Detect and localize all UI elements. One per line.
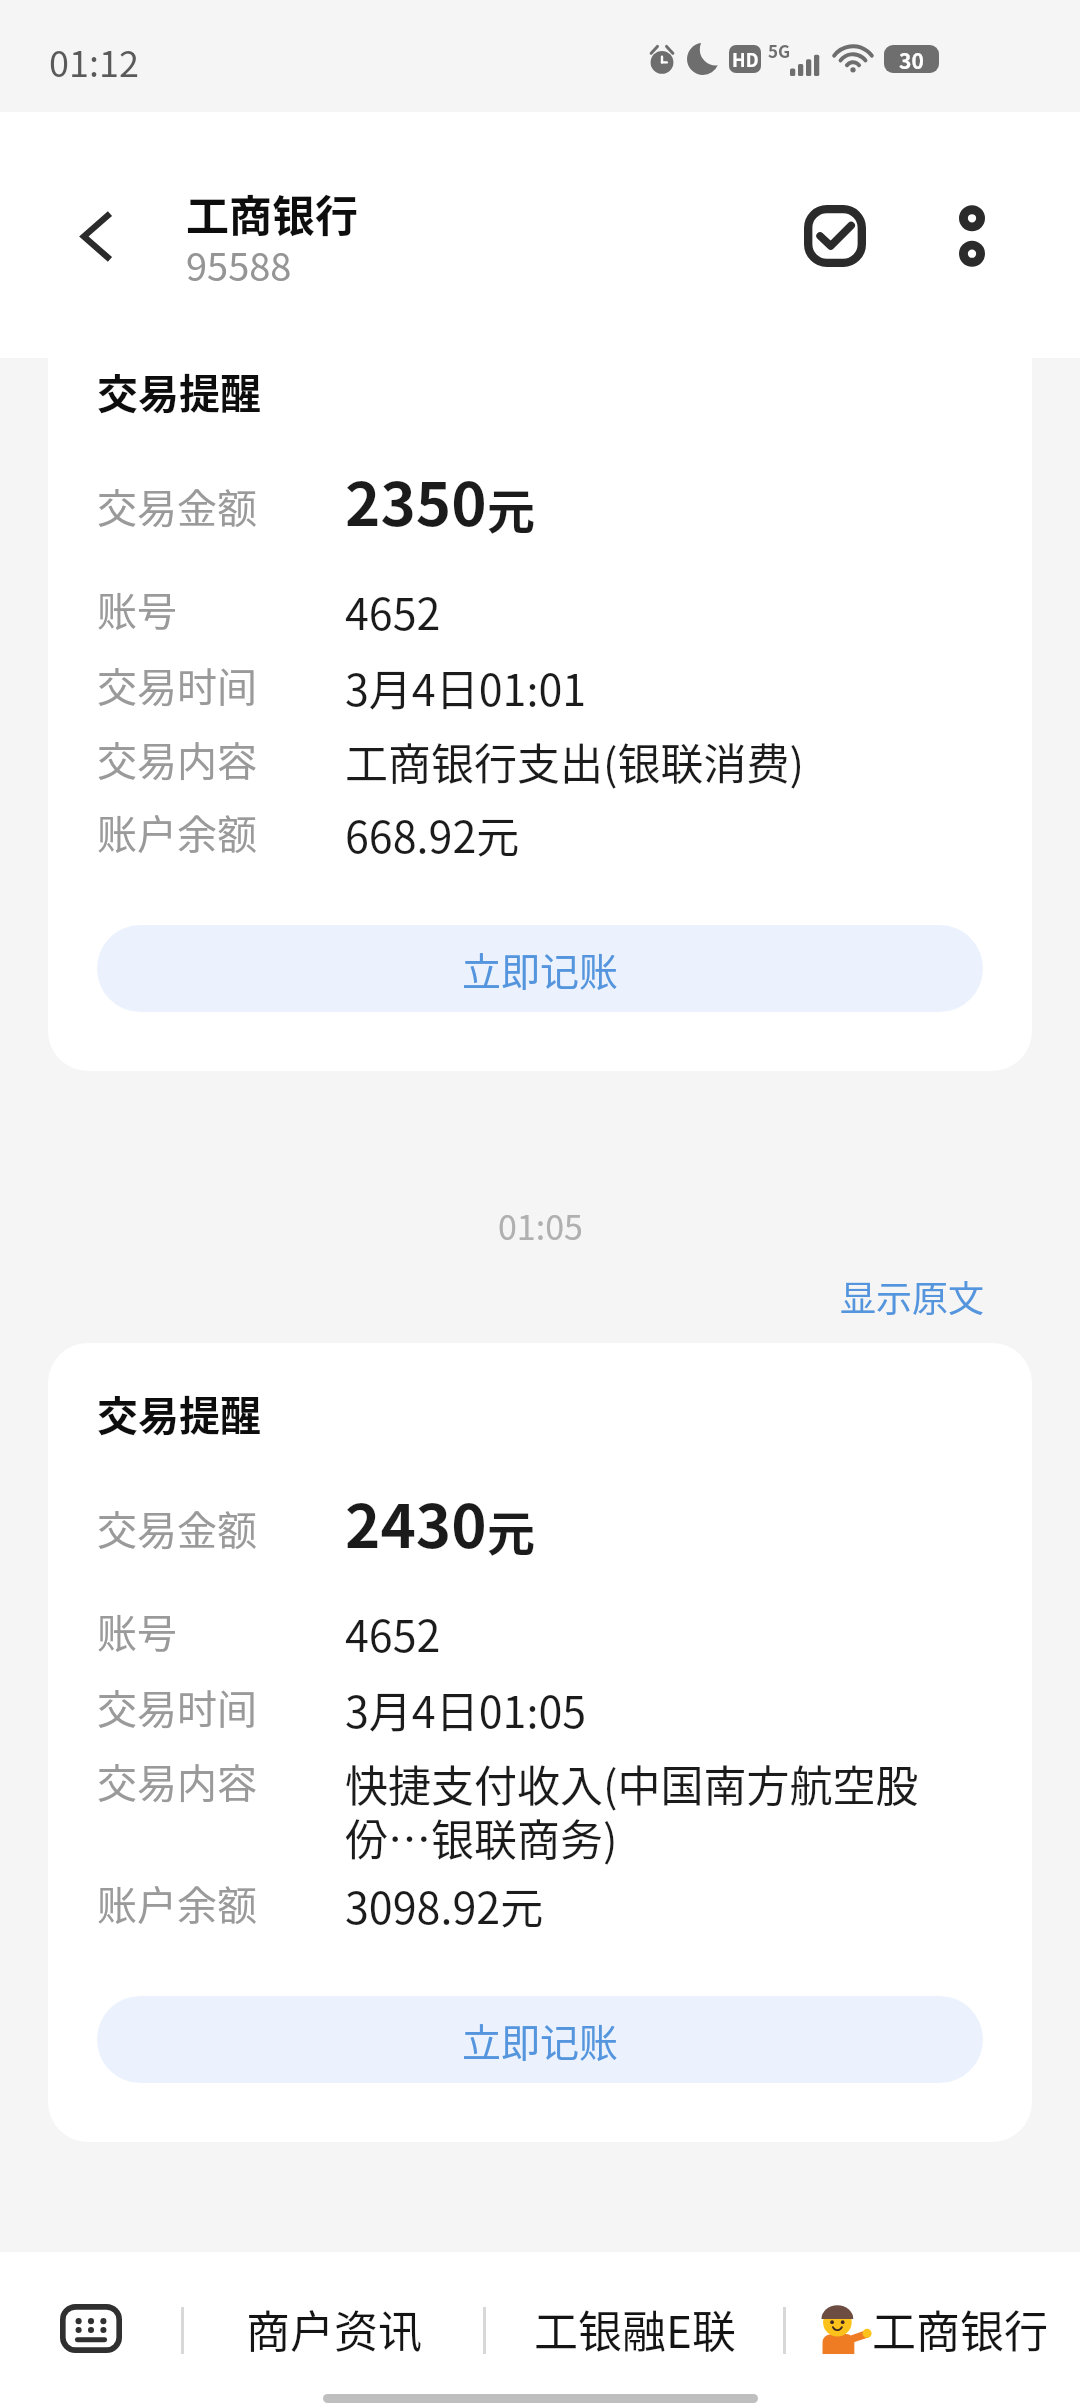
staticText: HD [732,46,759,72]
staticText: 交易内容 [97,730,257,788]
button[interactable]: Keyboard [0,2254,182,2406]
staticText: 4652 [345,580,441,642]
staticText: 账户余额 [97,803,257,861]
button[interactable]: 工银融E联 [486,2252,783,2408]
staticText: 3098.92元 [345,1874,544,1936]
staticText: 4652 [345,1602,441,1664]
staticText: 交易提醒 [97,361,261,420]
staticText: 显示原文 [840,1270,985,1322]
button[interactable]: 商户资讯 [184,2252,483,2408]
staticText: 账户余额 [97,1874,257,1932]
staticText: 95588 [186,237,292,292]
staticText: 立即记账 [462,941,619,997]
button[interactable]: Back [55,196,135,276]
button[interactable]: 立即记账 [97,925,983,1012]
button[interactable]: 工商银行 [786,2297,1080,2357]
staticText: 工银融E联 [534,2297,736,2361]
staticText: 2430 [345,1478,487,1565]
staticText: 快捷支付收入(中国南方航空股 [345,1752,919,1814]
staticText: 账号 [97,580,177,638]
staticText: 工商银行 [186,182,358,244]
staticText: 立即记账 [462,2012,619,2068]
staticText: 5G [768,38,791,63]
staticText: 交易金额 [97,477,257,535]
staticText: 份…银联商务) [345,1806,618,1868]
button[interactable]: More options [924,181,1020,291]
staticText: 元 [487,473,536,543]
button[interactable]: 显示原文 [824,1259,1080,1327]
button[interactable]: Select messages [780,181,890,291]
staticText: 交易内容 [97,1752,257,1810]
staticText: 2350 [345,456,487,543]
staticText: 3月4日01:05 [345,1678,587,1740]
button[interactable]: 立即记账 [97,1996,983,2083]
staticText: 工商银行 [872,2297,1048,2357]
button[interactable]: 交易提醒 [48,358,1032,1071]
staticText: 668.92元 [345,803,520,865]
staticText: 元 [487,1495,536,1565]
staticText: 交易提醒 [97,1383,261,1442]
staticText: 01:05 [498,1201,583,1250]
staticText: 01:12 [49,35,139,87]
button[interactable]: 交易提醒 [48,1343,1032,2142]
staticText: 商户资讯 [246,2297,422,2361]
staticText: 账号 [97,1602,177,1660]
staticText: 30 [899,45,924,73]
staticText: 交易金额 [97,1499,257,1557]
staticText: 交易时间 [97,1678,257,1736]
staticText: 工商银行支出(银联消费) [345,730,805,792]
staticText: 交易时间 [97,656,257,714]
staticText: 3月4日01:01 [345,656,587,718]
